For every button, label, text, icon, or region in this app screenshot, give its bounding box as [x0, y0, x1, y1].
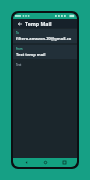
staticText: Text [16, 63, 22, 67]
button[interactable]: Home [39, 158, 51, 167]
button[interactable]: Back [16, 20, 23, 27]
staticText: From [16, 47, 23, 51]
button[interactable]: Recents [58, 158, 70, 167]
staticText: Temp Mail [25, 20, 52, 27]
button[interactable]: Back [20, 158, 32, 167]
button[interactable]: From [13, 45, 77, 59]
staticText: To [16, 31, 19, 35]
staticText: Test temp mail [16, 52, 46, 57]
staticText: filtera.amazon.20@gmail.com [16, 36, 74, 41]
button[interactable]: To [13, 29, 77, 43]
